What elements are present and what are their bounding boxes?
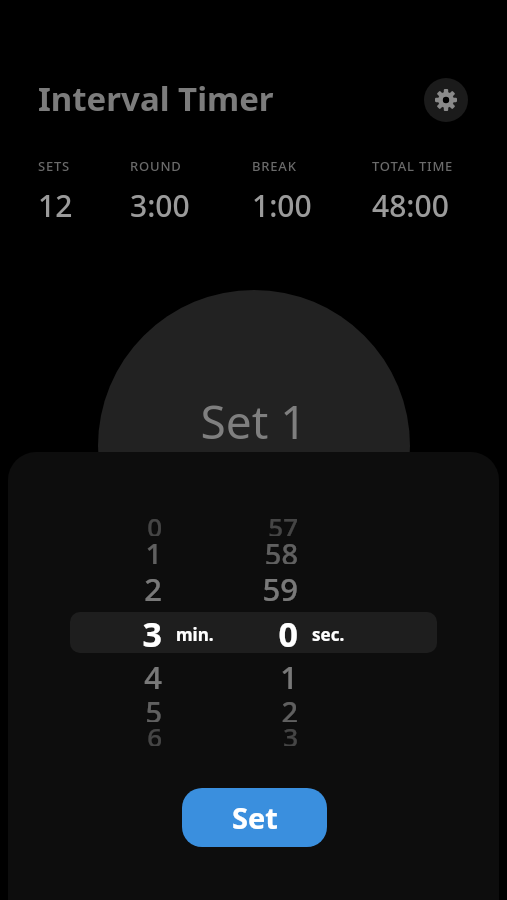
staticText: Interval Timer bbox=[38, 76, 274, 121]
button[interactable]: 1 bbox=[208, 656, 298, 689]
button[interactable]: 6 bbox=[72, 719, 162, 746]
button[interactable]: 2 bbox=[72, 568, 162, 601]
button[interactable]: 58 bbox=[208, 534, 298, 564]
button[interactable]: Settings bbox=[424, 78, 468, 122]
staticText: 3 bbox=[283, 719, 298, 746]
staticText: 1:00 bbox=[252, 185, 312, 226]
button[interactable]: 0 bbox=[208, 611, 298, 647]
staticText: 2 bbox=[144, 568, 162, 601]
button[interactable]: 3 bbox=[208, 719, 298, 746]
button[interactable]: 57 bbox=[208, 509, 298, 536]
button[interactable]: 4 bbox=[72, 656, 162, 689]
staticText: 6 bbox=[147, 719, 162, 746]
button[interactable]: 0 bbox=[72, 509, 162, 536]
staticText: 48:00 bbox=[372, 185, 449, 226]
staticText: SETS bbox=[38, 157, 71, 175]
staticText: BREAK bbox=[252, 157, 297, 175]
staticText: 4 bbox=[144, 656, 162, 689]
button[interactable]: 5 bbox=[72, 692, 162, 722]
staticText: sec. bbox=[312, 623, 345, 646]
staticText: 2 bbox=[281, 692, 298, 722]
staticText: 57 bbox=[268, 509, 298, 536]
staticText: 0 bbox=[278, 611, 298, 647]
button[interactable]: 2 bbox=[208, 692, 298, 722]
button[interactable]: 59 bbox=[208, 568, 298, 601]
staticText: Set bbox=[232, 798, 278, 837]
staticText: 3:00 bbox=[130, 185, 190, 226]
staticText: 5 bbox=[145, 692, 162, 722]
staticText: 58 bbox=[264, 534, 298, 564]
staticText: 3 bbox=[142, 611, 162, 647]
staticText: TOTAL TIME bbox=[372, 157, 454, 175]
staticText: 59 bbox=[262, 568, 298, 601]
staticText: 12 bbox=[38, 185, 73, 226]
button[interactable]: 1 bbox=[72, 534, 162, 564]
button[interactable]: 3 bbox=[72, 611, 162, 647]
staticText: 0 bbox=[147, 509, 162, 536]
staticText: 1 bbox=[280, 656, 298, 689]
staticText: 1 bbox=[145, 534, 162, 564]
staticText: ROUND bbox=[130, 157, 182, 175]
staticText: Set 1 bbox=[200, 390, 307, 453]
button[interactable]: Set bbox=[182, 788, 327, 847]
staticText: min. bbox=[176, 623, 214, 646]
